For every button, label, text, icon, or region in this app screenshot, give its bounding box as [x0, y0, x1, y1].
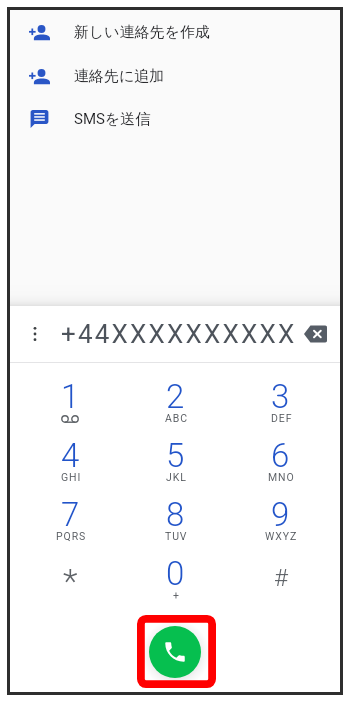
staticText: # — [274, 564, 288, 592]
staticText: MNO — [268, 471, 295, 483]
button[interactable]: 7 — [17, 484, 123, 543]
staticText: +44XXXXXXXXXX — [61, 319, 297, 349]
staticText: 6 — [271, 436, 290, 475]
button[interactable]: 1 — [17, 366, 123, 425]
staticText: 1 — [61, 377, 80, 416]
button[interactable]: 3 — [228, 366, 333, 425]
button[interactable]: More options — [23, 322, 47, 346]
staticText: * — [63, 561, 78, 601]
staticText: 連絡先に追加 — [74, 67, 165, 86]
staticText: 3 — [271, 377, 290, 416]
staticText: 0 — [166, 554, 185, 593]
staticText: 新しい連絡先を作成 — [74, 23, 211, 42]
staticText: 4 — [61, 436, 80, 475]
button[interactable]: Backspace — [303, 322, 327, 346]
button[interactable]: * — [17, 543, 123, 602]
staticText: SMSを送信 — [74, 110, 151, 129]
staticText: + — [173, 589, 180, 601]
staticText: 8 — [166, 495, 185, 534]
staticText: JKL — [166, 471, 187, 483]
staticText: 2 — [166, 377, 185, 416]
staticText: GHI — [61, 471, 82, 483]
button[interactable]: 0 — [123, 543, 228, 602]
staticText: PQRS — [56, 530, 87, 542]
staticText: ABC — [165, 412, 188, 424]
button[interactable]: 6 — [228, 425, 333, 484]
button[interactable]: 新しい連絡先を作成 — [10, 10, 340, 54]
staticText: 5 — [166, 436, 185, 475]
staticText: DEF — [271, 412, 293, 424]
staticText: WXYZ — [265, 530, 298, 542]
staticText: 7 — [61, 495, 80, 534]
button[interactable]: SMSを送信 — [10, 97, 340, 141]
button[interactable]: 9 — [228, 484, 333, 543]
button[interactable]: Call — [149, 626, 201, 678]
button[interactable]: 連絡先に追加 — [10, 54, 340, 98]
staticText: 9 — [271, 495, 290, 534]
button[interactable]: 8 — [123, 484, 228, 543]
button[interactable]: 2 — [123, 366, 228, 425]
button[interactable]: # — [228, 543, 333, 602]
staticText: TUV — [165, 530, 188, 542]
button[interactable]: 5 — [123, 425, 228, 484]
button[interactable]: 4 — [17, 425, 123, 484]
